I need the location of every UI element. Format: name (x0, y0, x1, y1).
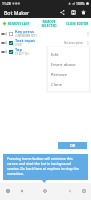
staticText: REMOVE LAST (8, 22, 30, 26)
button[interactable]: Clone (48, 80, 89, 90)
staticText: 4 (5, 50, 7, 54)
button[interactable]: OK (58, 142, 87, 149)
button[interactable]: Share (58, 8, 66, 16)
button[interactable]: REMOVE SELECTED (41, 20, 57, 28)
button[interactable]: 4 (0, 38, 91, 47)
button[interactable]: Select item (8, 31, 13, 36)
button[interactable]: Select item (8, 40, 13, 45)
button[interactable]: REMOVE LAST (0, 21, 30, 26)
button[interactable]: Delete (79, 8, 87, 16)
button[interactable]: Save (69, 8, 77, 16)
button[interactable]: Select item (8, 49, 13, 54)
button[interactable]: 4 (0, 47, 91, 56)
staticText: 11:28 (2, 1, 11, 6)
staticText: Pressing home button will minimize this … (7, 156, 84, 176)
staticText: Insert above (51, 62, 76, 68)
staticText: Remove (51, 72, 67, 78)
staticText: Text input (15, 38, 36, 43)
button[interactable]: Item menu (85, 49, 91, 55)
staticText: ( UNKNOWN KEY ) (15, 34, 37, 38)
button[interactable]: Home (41, 187, 49, 195)
staticText: 100% (76, 1, 85, 6)
button[interactable]: 4 (0, 29, 91, 38)
staticText: 4 (5, 41, 7, 45)
button[interactable]: Accessibility (4, 187, 12, 195)
staticText: No description (64, 41, 84, 45)
staticText: ( X 25 Y 76 ) (15, 52, 29, 56)
staticText: Clone (51, 82, 63, 88)
button[interactable]: Recents (80, 187, 88, 195)
button[interactable]: Remove (48, 70, 89, 80)
button[interactable]: CLOSE EDITOR (66, 22, 91, 26)
button[interactable]: Item menu (85, 31, 91, 37)
button[interactable]: Insert above (48, 60, 89, 70)
staticText: ( FGI ) (15, 43, 23, 47)
staticText: Key press (15, 29, 34, 34)
button[interactable]: Item menu (85, 40, 91, 46)
staticText: OK (70, 143, 76, 148)
button[interactable]: Edit (48, 50, 89, 60)
button[interactable]: Back (66, 187, 74, 195)
staticText: 4 (5, 32, 7, 36)
staticText: Tap (15, 47, 22, 52)
button[interactable]: Pause (18, 187, 26, 195)
staticText: Edit (51, 52, 59, 58)
staticText: Bot Maker (4, 9, 30, 16)
